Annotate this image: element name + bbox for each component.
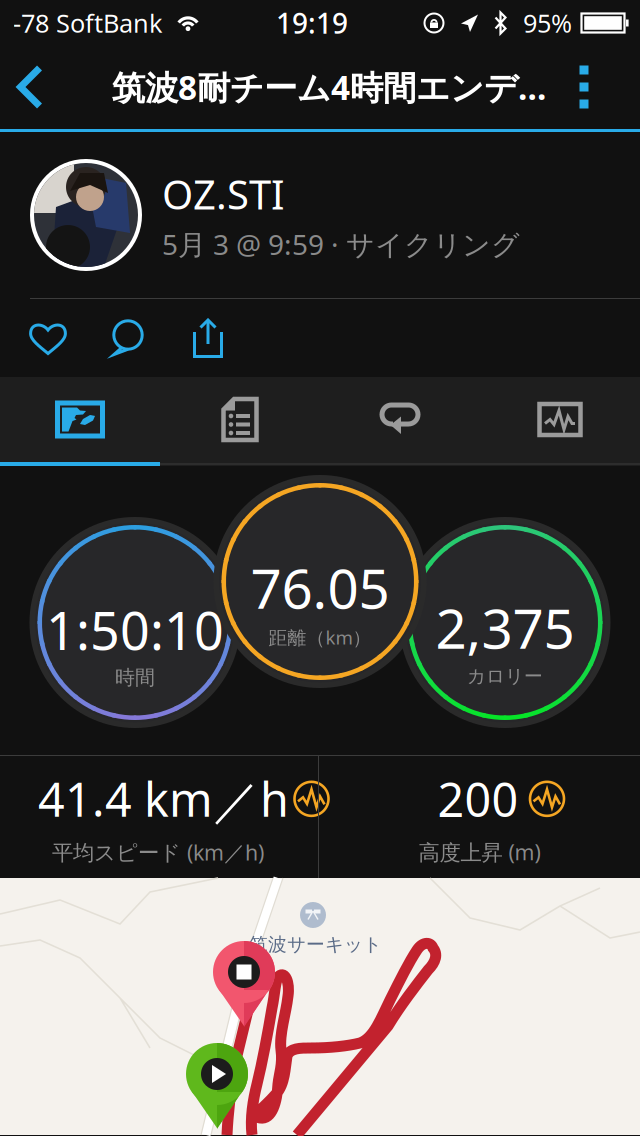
staticText: 距離（km） (268, 625, 371, 650)
staticText: 19:19 (276, 4, 348, 42)
button[interactable]: Like (8, 299, 88, 377)
staticText: 76.05 (250, 551, 389, 624)
button[interactable]: More options (556, 45, 612, 129)
staticText: 筑波サーキット (249, 933, 382, 956)
button[interactable]: Back (0, 45, 59, 129)
staticText: -78 SoftBank (13, 6, 163, 40)
staticText: 2,375 (435, 591, 574, 664)
staticText: 200 (437, 768, 518, 830)
staticText: 筑波8耐チーム4時間エンデ… (112, 65, 547, 109)
staticText: 平均スピード (km／h) (52, 838, 264, 866)
button[interactable]: Map (0, 377, 160, 462)
staticText: OZ.STI (162, 167, 285, 220)
button[interactable]: Share (168, 299, 248, 377)
button[interactable]: Graph (480, 377, 640, 462)
button[interactable]: Comment (88, 299, 168, 377)
staticText: 高度上昇 (m) (418, 838, 540, 866)
button[interactable]: Laps (320, 377, 480, 462)
staticText: 41.4 km／h (38, 768, 289, 830)
staticText: 1:50:10 (46, 595, 224, 664)
button[interactable]: Details (160, 377, 320, 462)
staticText: 5月 3 @ 9:59 · サイクリング (162, 225, 520, 263)
staticText: 時間 (115, 665, 155, 690)
staticText: カロリー (467, 665, 543, 688)
staticText: 95% (523, 6, 572, 40)
